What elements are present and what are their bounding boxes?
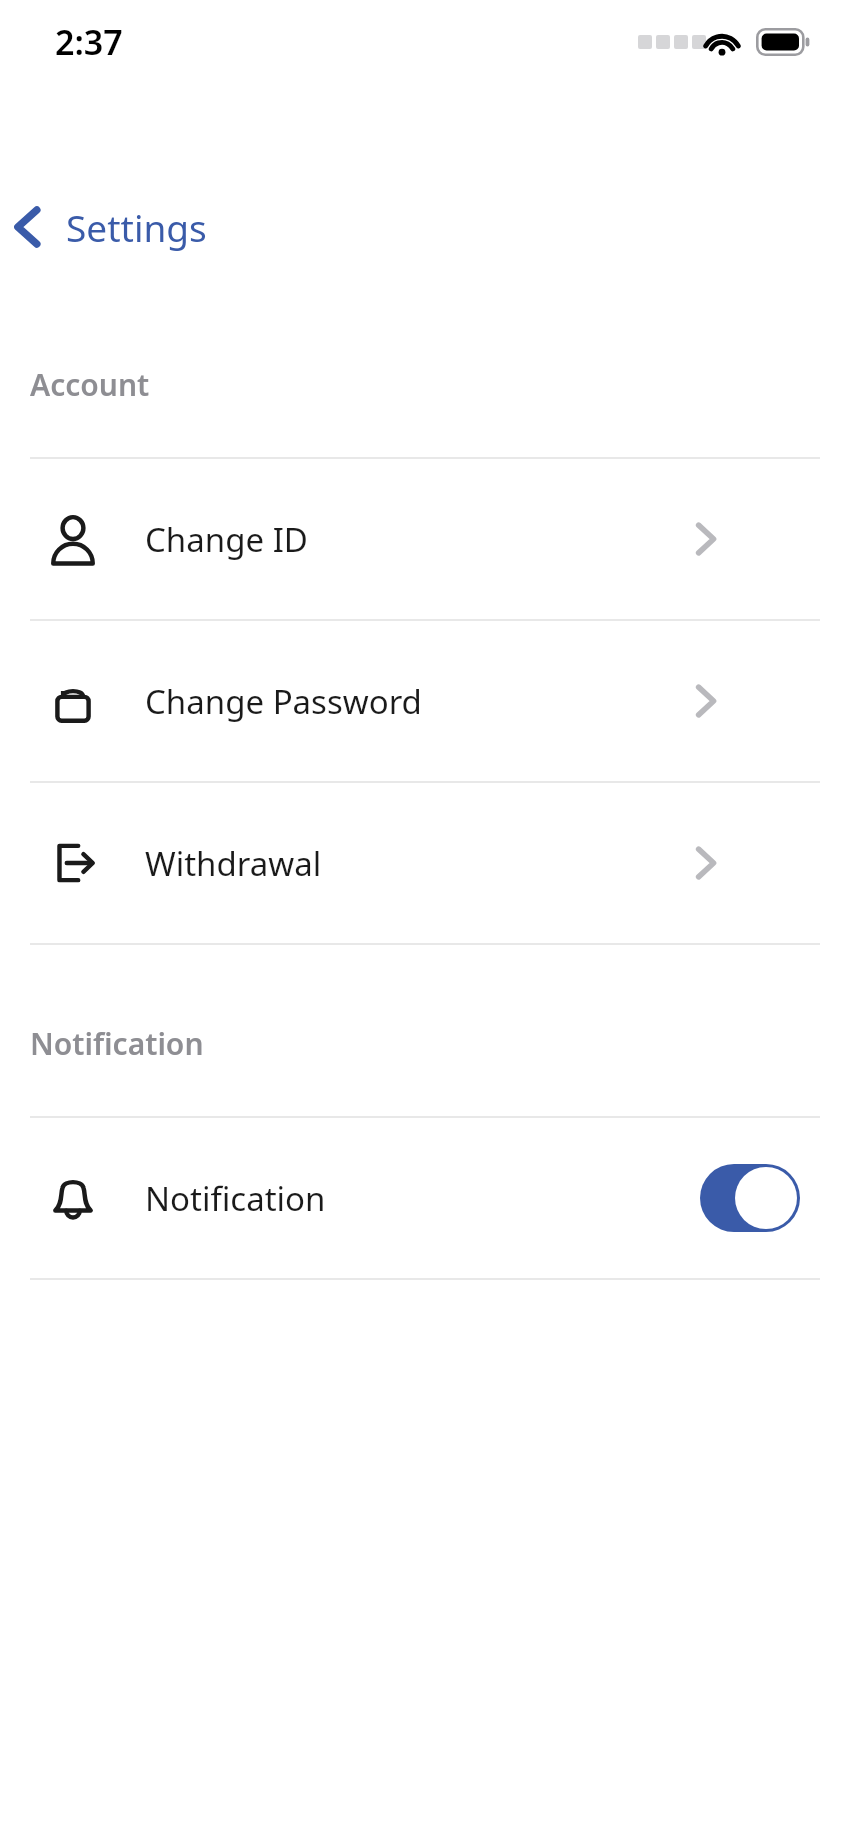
button[interactable]: Withdrawal <box>0 783 850 943</box>
staticText: 2:37 <box>55 19 123 65</box>
button[interactable]: Notification <box>0 1118 850 1278</box>
button[interactable]: Notification toggle, on <box>700 1164 800 1232</box>
staticText: Notification <box>30 1023 204 1064</box>
staticText: Account <box>30 364 150 405</box>
staticText: Withdrawal <box>145 841 322 886</box>
staticText: Change ID <box>145 517 308 562</box>
button[interactable]: Change ID <box>0 459 850 619</box>
other: Back <box>6 202 50 252</box>
staticText: Change Password <box>145 679 422 724</box>
button[interactable]: Change Password <box>0 621 850 781</box>
staticText: Settings <box>66 202 207 252</box>
staticText: Notification <box>145 1176 326 1221</box>
button[interactable]: Back <box>0 196 850 258</box>
